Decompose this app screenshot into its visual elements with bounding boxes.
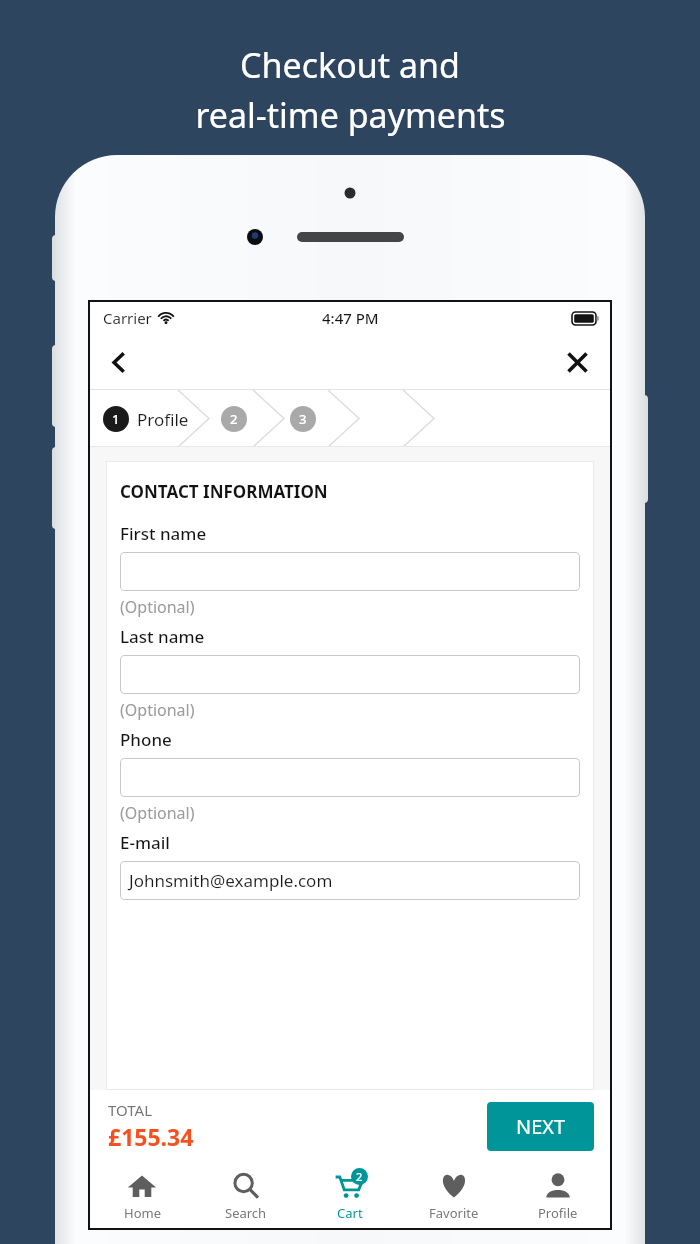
button[interactable]: Johnsmith@example.com [120, 861, 580, 900]
staticText: First name [120, 522, 207, 545]
button[interactable]: NEXT [487, 1102, 594, 1151]
button[interactable]: 1 [103, 406, 189, 432]
button[interactable] [120, 552, 580, 591]
staticText: Johnsmith@example.com [129, 869, 333, 892]
staticText: Cart [337, 1204, 363, 1222]
staticText: Checkout and [240, 42, 460, 88]
staticText: Profile [538, 1204, 578, 1222]
staticText: E-mail [120, 831, 170, 854]
staticText: (Optional) [120, 802, 195, 824]
staticText: real-time payments [195, 92, 506, 138]
button[interactable]: 3 [290, 406, 316, 432]
staticText: TOTAL [108, 1100, 153, 1120]
button[interactable] [120, 758, 580, 797]
staticText: 2 [356, 1169, 363, 1184]
staticText: Phone [120, 728, 172, 751]
button[interactable]: 2 [298, 1162, 402, 1228]
staticText: (Optional) [120, 596, 195, 618]
staticText: 2 [230, 410, 238, 428]
button[interactable]: Close [553, 338, 601, 386]
button[interactable]: 2 [221, 406, 247, 432]
staticText: NEXT [516, 1113, 566, 1140]
staticText: Carrier [103, 308, 152, 328]
staticText: Last name [120, 625, 205, 648]
button[interactable]: Home [90, 1162, 194, 1228]
staticText: 3 [299, 410, 307, 428]
staticText: Home [124, 1204, 161, 1222]
staticText: Profile [137, 408, 189, 431]
staticText: 4:47 PM [322, 308, 379, 328]
button[interactable] [120, 655, 580, 694]
staticText: Favorite [429, 1204, 479, 1222]
staticText: (Optional) [120, 699, 195, 721]
staticText: Search [225, 1204, 267, 1222]
button[interactable]: Search [194, 1162, 298, 1228]
button[interactable]: Back [95, 338, 143, 386]
staticText: CONTACT INFORMATION [120, 480, 328, 503]
button[interactable]: Profile [506, 1162, 610, 1228]
button[interactable]: Favorite [402, 1162, 506, 1228]
staticText: 1 [112, 410, 120, 428]
staticText: £155.34 [108, 1121, 194, 1152]
